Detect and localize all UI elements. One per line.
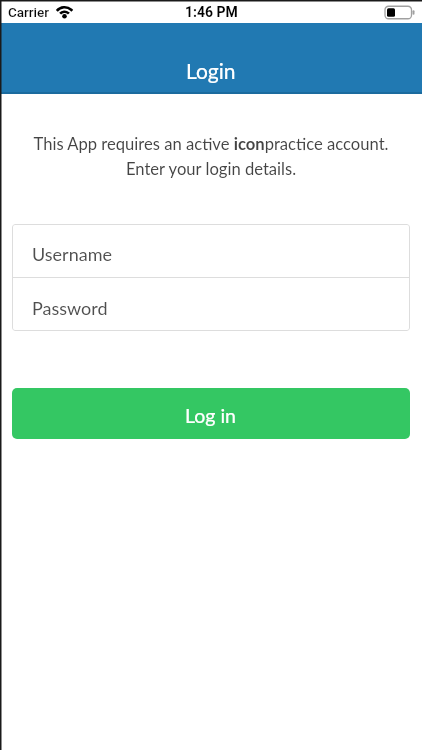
button[interactable]: Username — [12, 224, 410, 277]
button[interactable]: Log in — [12, 388, 410, 439]
staticText: Carrier — [8, 4, 50, 20]
staticText: Password — [32, 297, 108, 319]
button[interactable]: Password — [12, 278, 410, 331]
staticText: Log in — [185, 404, 237, 427]
staticText: Login — [186, 58, 236, 83]
staticText: This App requires an active iconpractice… — [0, 134, 422, 178]
staticText: 1:46 PM — [185, 4, 238, 20]
staticText: Username — [32, 243, 112, 265]
